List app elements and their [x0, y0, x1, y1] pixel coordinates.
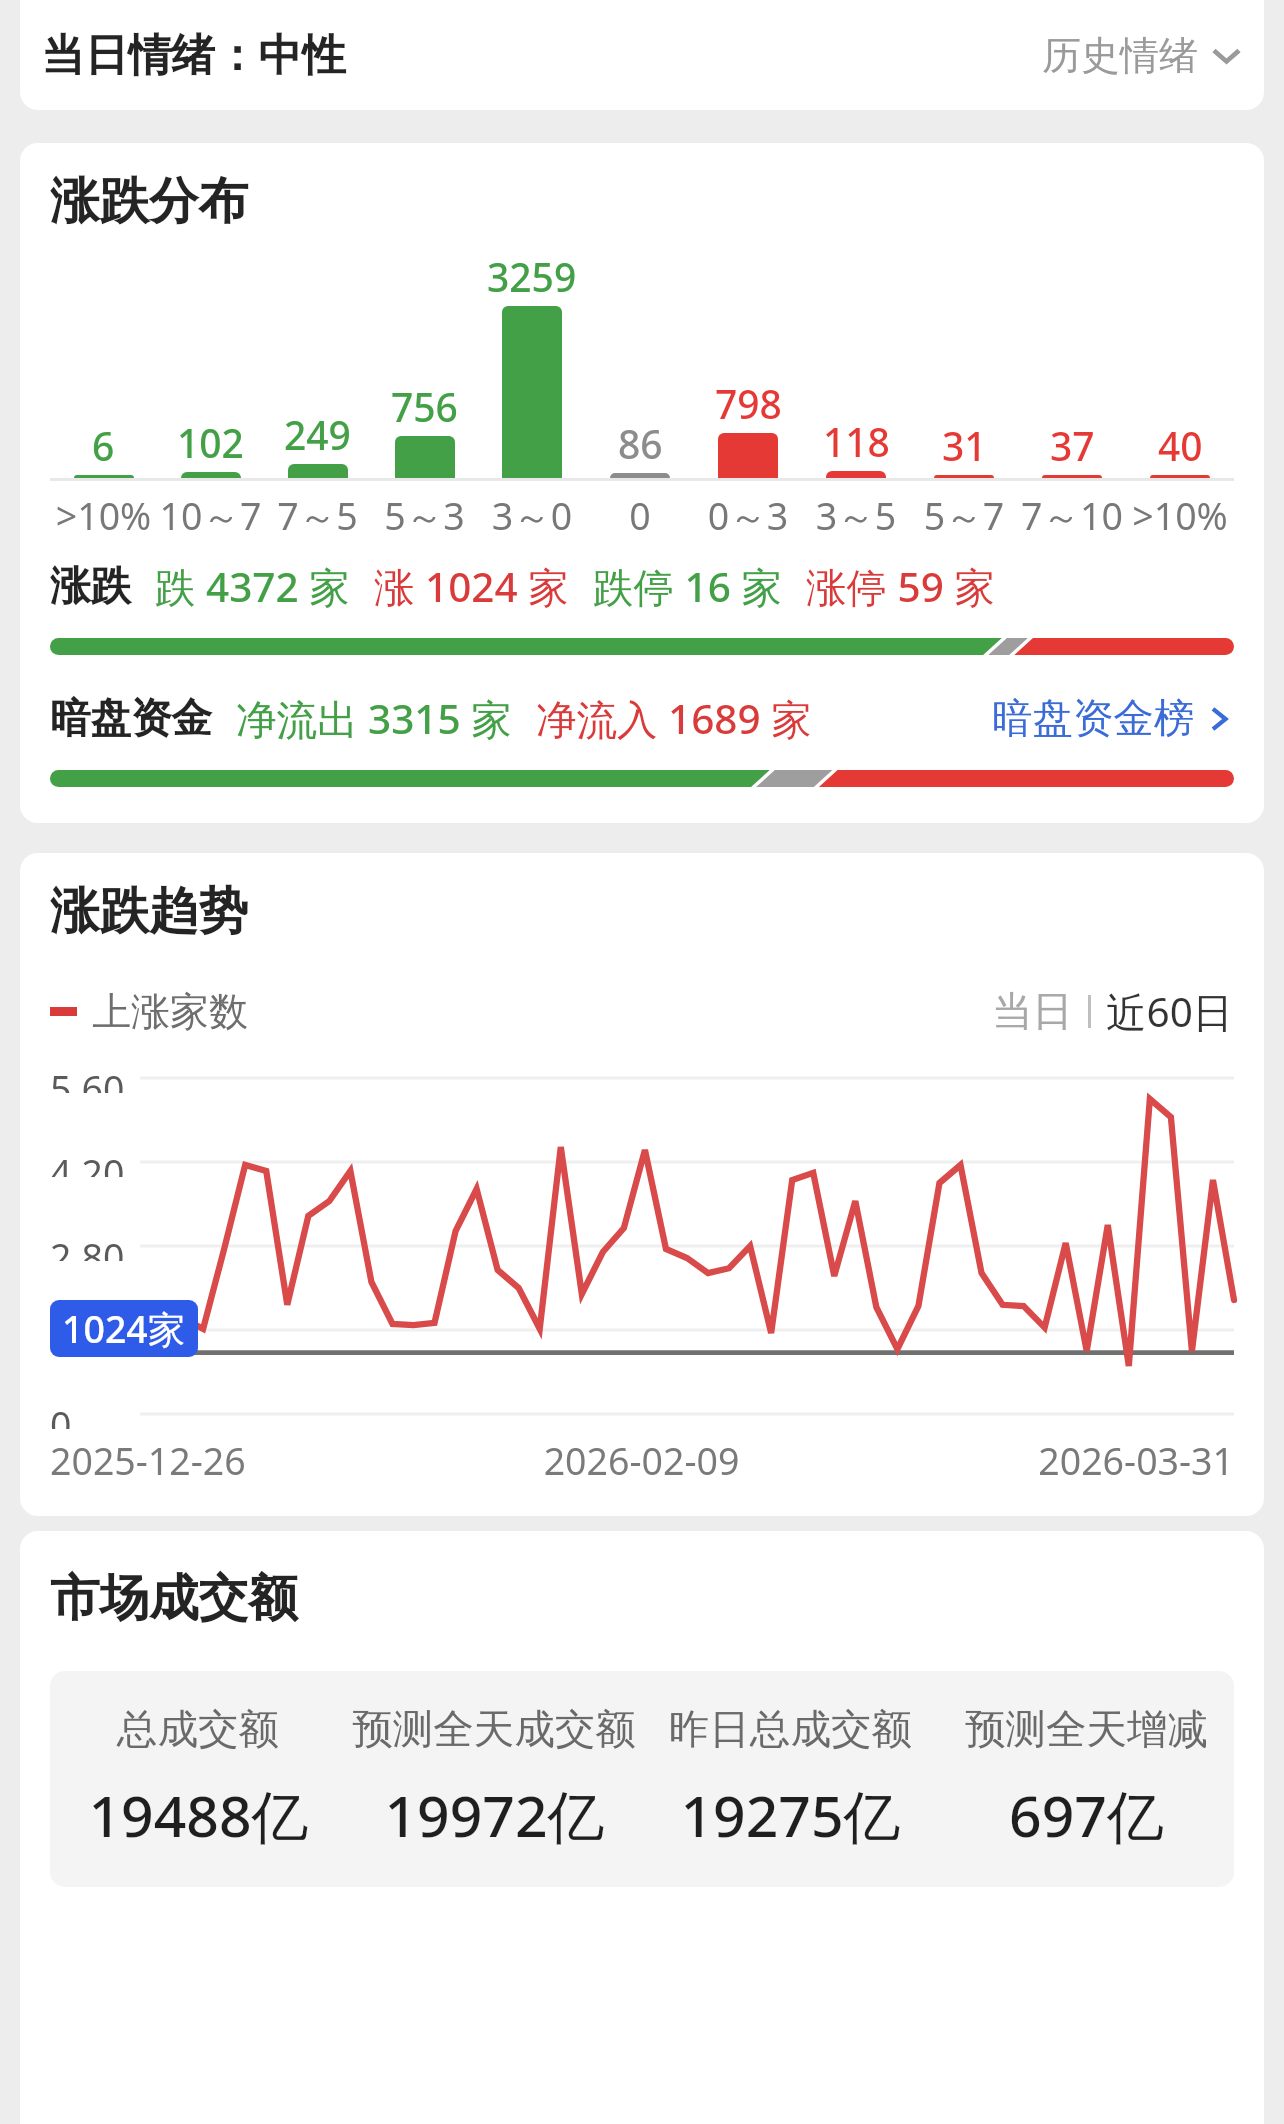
staticText: 跌 4372 家 — [155, 559, 350, 614]
staticText: 涨跌分布 — [50, 170, 248, 232]
button[interactable]: 昨日总成交额 — [642, 1704, 938, 1854]
button[interactable]: 预测全天成交额 — [346, 1704, 642, 1854]
button[interactable]: 总成交额 — [50, 1704, 346, 1854]
staticText: 2026-03-31 — [839, 1435, 1234, 1486]
staticText: 19275亿 — [680, 1776, 901, 1854]
staticText: 净流入 1689 家 — [536, 691, 812, 746]
staticText: 0 — [586, 490, 694, 541]
staticText: 预测全天增减 — [965, 1704, 1208, 1755]
staticText: 1,400 — [50, 1315, 134, 1345]
staticText: 涨跌趋势 — [50, 880, 248, 942]
staticText: 5,600 — [50, 1063, 134, 1093]
staticText: 86 — [618, 417, 663, 470]
staticText: 3259 — [487, 250, 577, 303]
staticText: 5～3 — [371, 490, 478, 541]
staticText: 历史情绪 — [1042, 31, 1198, 80]
button[interactable]: 近60日 — [1106, 984, 1234, 1039]
staticText: 暗盘资金 — [50, 693, 212, 744]
button[interactable]: 暗盘资金榜 — [992, 693, 1234, 744]
staticText: 3～0 — [478, 490, 586, 541]
staticText: 市场成交额 — [50, 1567, 298, 1629]
staticText: 7～10 — [1018, 490, 1126, 541]
button[interactable]: 历史情绪 — [1042, 31, 1243, 80]
staticText: 近60日 — [1106, 984, 1234, 1039]
staticText: 5～7 — [910, 490, 1018, 541]
staticText: 19488亿 — [88, 1776, 309, 1854]
button[interactable]: 当日 — [992, 986, 1073, 1037]
staticText: 1024家 — [62, 1303, 186, 1354]
staticText: 249 — [284, 408, 351, 461]
staticText: 4,200 — [50, 1147, 134, 1177]
staticText: 上涨家数 — [92, 987, 248, 1036]
staticText: 798 — [715, 377, 782, 430]
staticText: 暗盘资金榜 — [992, 693, 1195, 744]
staticText: 756 — [391, 380, 458, 433]
staticText: 昨日总成交额 — [669, 1704, 912, 1755]
staticText: 697亿 — [1009, 1776, 1164, 1854]
staticText: 跌停 16 家 — [593, 559, 782, 614]
staticText: 2025-12-26 — [50, 1435, 444, 1486]
staticText: 40 — [1158, 419, 1203, 472]
staticText: >10% — [1126, 490, 1234, 541]
staticText: 102 — [177, 416, 244, 469]
button[interactable]: 预测全天增减 — [938, 1704, 1234, 1854]
staticText: 0 — [50, 1399, 72, 1429]
staticText: 31 — [942, 419, 987, 472]
staticText: >10% — [50, 490, 157, 541]
staticText: 3～5 — [802, 490, 910, 541]
staticText: 0～3 — [694, 490, 802, 541]
staticText: 7～5 — [264, 490, 371, 541]
other: 展开历史情绪 — [1210, 39, 1243, 72]
staticText: 2,800 — [50, 1231, 134, 1261]
staticText: 预测全天成交额 — [352, 1704, 636, 1755]
staticText: 19972亿 — [384, 1776, 605, 1854]
staticText: 10～7 — [157, 490, 264, 541]
staticText: 当日 — [992, 986, 1073, 1037]
staticText: 净流出 3315 家 — [236, 691, 512, 746]
staticText: 总成交额 — [117, 1704, 279, 1755]
staticText: 118 — [823, 415, 890, 468]
staticText: 37 — [1050, 419, 1095, 472]
staticText: 2026-02-09 — [444, 1435, 839, 1486]
staticText: 涨 1024 家 — [374, 559, 569, 614]
staticText: 涨停 59 家 — [806, 559, 995, 614]
staticText: 涨跌 — [50, 561, 131, 612]
staticText: 当日情绪：中性 — [41, 28, 346, 83]
staticText: 6 — [92, 419, 115, 472]
